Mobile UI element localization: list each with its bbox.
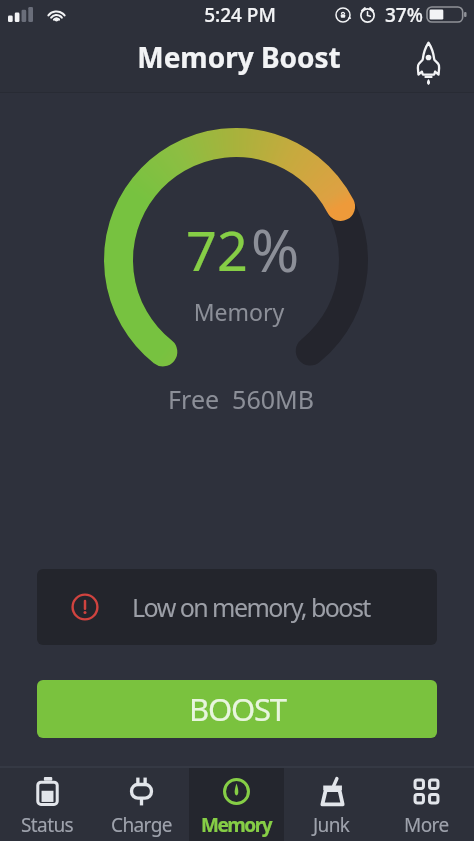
staticText: Charge	[111, 812, 172, 838]
button[interactable]: Boost memory	[404, 39, 452, 87]
button[interactable]: Low on memory, boost	[37, 569, 437, 645]
button[interactable]: Status	[0, 768, 94, 841]
staticText: 72	[186, 213, 248, 287]
button[interactable]: BOOST	[37, 680, 437, 738]
staticText: Junk	[313, 812, 350, 838]
staticText: More	[404, 812, 449, 838]
staticText: 37%	[385, 2, 423, 28]
button[interactable]: Charge	[94, 768, 189, 841]
staticText: Memory	[2, 296, 474, 327]
staticText: BOOST	[189, 688, 286, 730]
button[interactable]: Junk	[284, 768, 379, 841]
staticText: %	[251, 210, 300, 289]
staticText: Memory Boost	[2, 38, 474, 76]
staticText: Status	[21, 812, 74, 838]
button[interactable]: More	[379, 768, 474, 841]
staticText: Low on memory, boost	[132, 590, 370, 624]
staticText: Memory	[201, 812, 272, 838]
button[interactable]: Memory	[189, 768, 284, 841]
staticText: Free 560MB	[4, 382, 474, 416]
staticText: 5:24 PM	[3, 2, 474, 28]
